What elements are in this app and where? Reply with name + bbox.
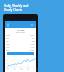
staticText: 18,402	[29, 49, 35, 51]
staticText: Steps	[6, 34, 11, 36]
staticText: Cal	[6, 40, 9, 42]
staticText: 6.1	[32, 37, 35, 39]
staticText: Best	[6, 49, 10, 51]
button[interactable]: Menu	[6, 23, 9, 26]
button[interactable]: Search	[30, 23, 33, 26]
button[interactable]: Menu	[5, 21, 36, 28]
staticText: 12,480	[17, 28, 25, 31]
staticText: 8,204	[30, 34, 35, 36]
staticText: Daily, Weekly and	[4, 4, 29, 8]
button[interactable]	[7, 52, 34, 55]
button[interactable]: Time	[5, 42, 36, 45]
staticText: Time	[6, 43, 10, 45]
staticText: Yearly Charts	[4, 8, 23, 12]
button[interactable]: Avg	[5, 45, 36, 48]
button[interactable]: Steps	[5, 33, 36, 36]
button[interactable]: Cal	[5, 39, 36, 42]
staticText: 52m	[31, 43, 35, 45]
staticText: 430	[32, 40, 35, 42]
button[interactable]: Dist	[5, 36, 36, 39]
button[interactable]: Best	[5, 48, 36, 51]
button[interactable]: More options	[33, 23, 36, 26]
staticText: Avg	[6, 46, 9, 48]
staticText: 9,120	[30, 46, 35, 48]
staticText: Dist	[6, 37, 10, 39]
staticText: steps today	[16, 31, 26, 33]
